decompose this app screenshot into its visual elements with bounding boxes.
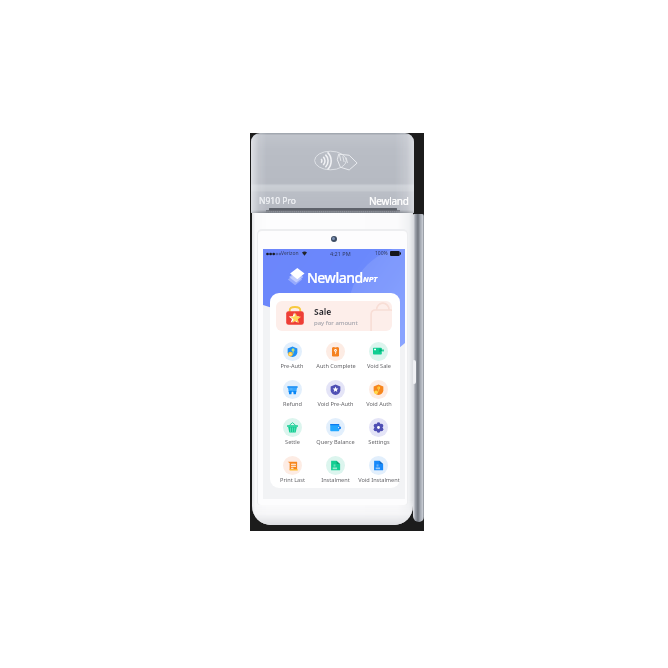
staticText: Newland: [307, 268, 363, 287]
staticText: pay for amount: [314, 319, 358, 327]
button[interactable]: Settings: [357, 418, 400, 456]
staticText: N910 Pro: [259, 195, 296, 207]
staticText: Settings: [368, 438, 390, 446]
button[interactable]: Void Auth: [357, 380, 400, 418]
staticText: Newland: [369, 194, 409, 208]
staticText: Void Instalment: [358, 476, 400, 484]
button[interactable]: Sale: [276, 301, 392, 331]
button[interactable]: Instalment: [314, 456, 357, 488]
button[interactable]: Void Sale: [357, 342, 400, 380]
button[interactable]: Void Instalment: [357, 456, 400, 488]
staticText: NPT: [363, 274, 378, 284]
button[interactable]: Auth Complete: [314, 342, 357, 380]
button[interactable]: Pre-Auth: [270, 342, 314, 380]
staticText: Print Last: [280, 476, 305, 484]
button[interactable]: Refund: [270, 380, 314, 418]
staticText: Verizon: [281, 250, 299, 257]
button[interactable]: Query Balance: [314, 418, 357, 456]
staticText: Void Pre-Auth: [317, 400, 354, 408]
staticText: Auth Complete: [316, 362, 356, 370]
staticText: Refund: [283, 400, 302, 408]
other: Contactless payment: [314, 150, 358, 171]
staticText: Query Balance: [316, 438, 355, 446]
staticText: 100%: [375, 250, 388, 257]
staticText: Settle: [285, 438, 300, 446]
button[interactable]: Print Last: [270, 456, 314, 488]
staticText: Void Sale: [367, 362, 391, 370]
staticText: Sale: [314, 306, 332, 318]
staticText: Instalment: [321, 476, 350, 484]
staticText: Pre-Auth: [280, 362, 304, 370]
button[interactable]: Settle: [270, 418, 314, 456]
staticText: 4:21 PM: [330, 250, 351, 257]
button[interactable]: Void Pre-Auth: [314, 380, 357, 418]
staticText: Void Auth: [366, 400, 392, 408]
